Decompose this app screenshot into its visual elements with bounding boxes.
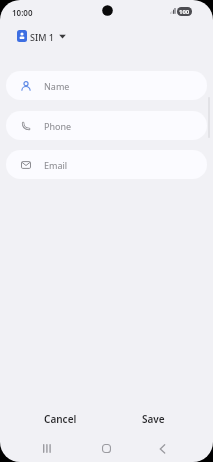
staticText: Cancel bbox=[44, 412, 77, 426]
staticText: Phone bbox=[44, 120, 72, 132]
staticText: SIM 1 bbox=[30, 31, 54, 43]
staticText: Name bbox=[44, 80, 70, 92]
staticText: 100 bbox=[179, 8, 190, 16]
staticText: 10:00 bbox=[12, 7, 33, 18]
staticText: Email bbox=[44, 159, 68, 171]
staticText: Save bbox=[142, 412, 165, 426]
